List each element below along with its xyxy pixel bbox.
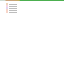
button[interactable] xyxy=(0,3,64,5)
button[interactable] xyxy=(0,11,64,13)
button[interactable] xyxy=(0,0,64,1)
button[interactable] xyxy=(0,9,64,11)
button[interactable] xyxy=(0,7,64,9)
button[interactable] xyxy=(0,5,64,7)
